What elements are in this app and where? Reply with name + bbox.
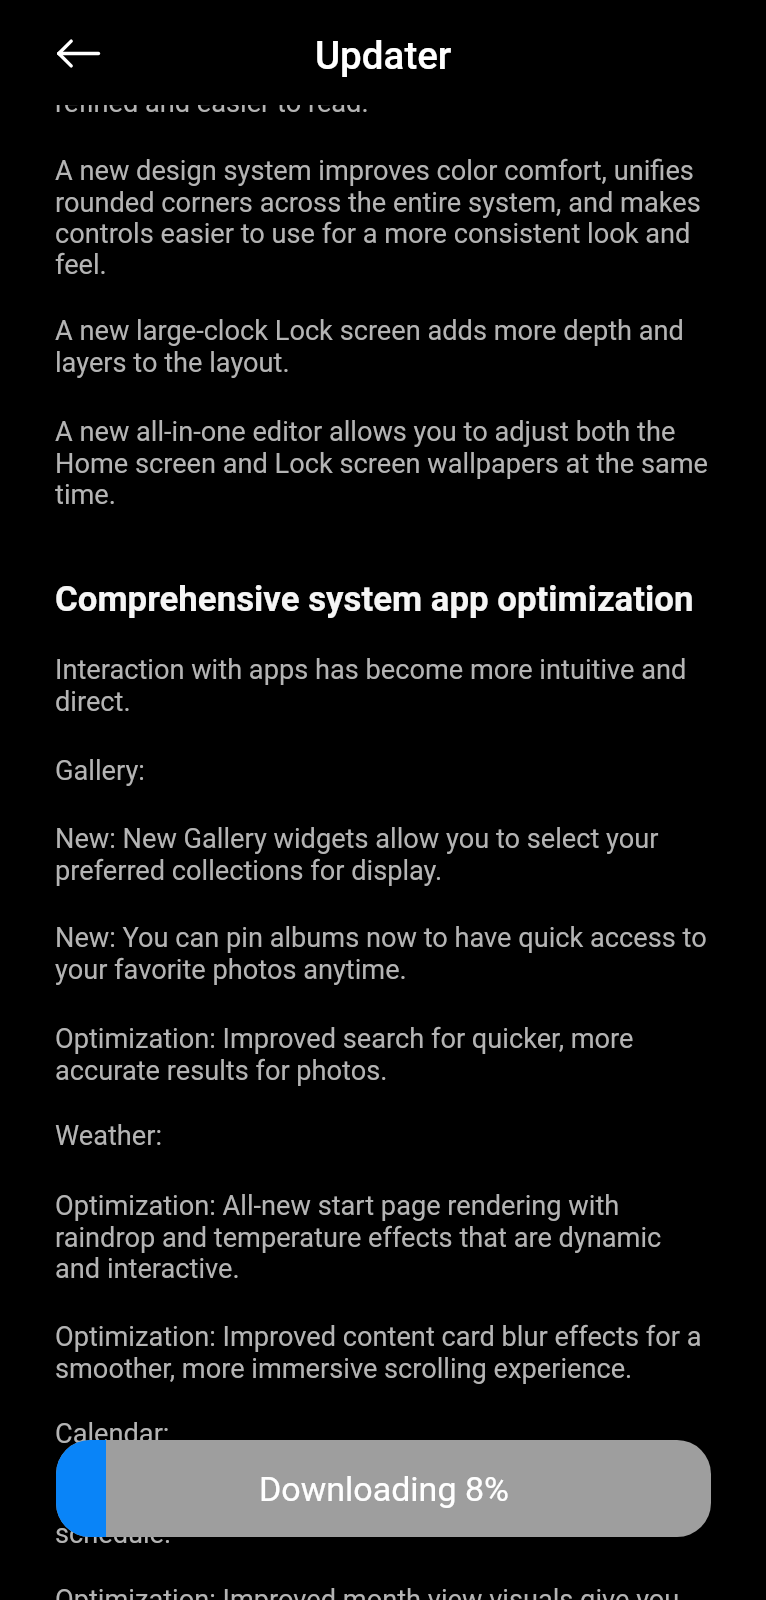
- staticText: A new large-clock Lock screen adds more …: [55, 315, 755, 378]
- button[interactable]: Back: [45, 20, 111, 86]
- staticText: Weather:: [55, 1120, 755, 1152]
- staticText: A new design system improves color comfo…: [55, 155, 755, 280]
- staticText: Optimization: Improved month view visual…: [55, 1584, 755, 1600]
- staticText: New: New Gallery widgets allow you to se…: [55, 823, 755, 886]
- button[interactable]: Downloading 8%: [56, 1440, 711, 1537]
- staticText: Gallery:: [55, 755, 755, 787]
- staticText: New: You can pin albums now to have quic…: [55, 922, 755, 985]
- staticText: Optimization: All-new start page renderi…: [55, 1190, 755, 1284]
- staticText: refined and easier to read.: [55, 87, 755, 119]
- staticText: New: Added subscription options to your …: [55, 1486, 755, 1549]
- staticText: Optimization: Improved search for quicke…: [55, 1023, 755, 1086]
- staticText: A new all-in-one editor allows you to ad…: [55, 416, 755, 510]
- staticText: Comprehensive system app optimization: [55, 579, 755, 620]
- staticText: Interaction with apps has become more in…: [55, 654, 755, 717]
- staticText: Optimization: Improved content card blur…: [55, 1321, 755, 1384]
- staticText: Downloading 8%: [259, 1469, 509, 1509]
- staticText: Updater: [315, 33, 452, 78]
- staticText: Calendar:: [55, 1418, 755, 1450]
